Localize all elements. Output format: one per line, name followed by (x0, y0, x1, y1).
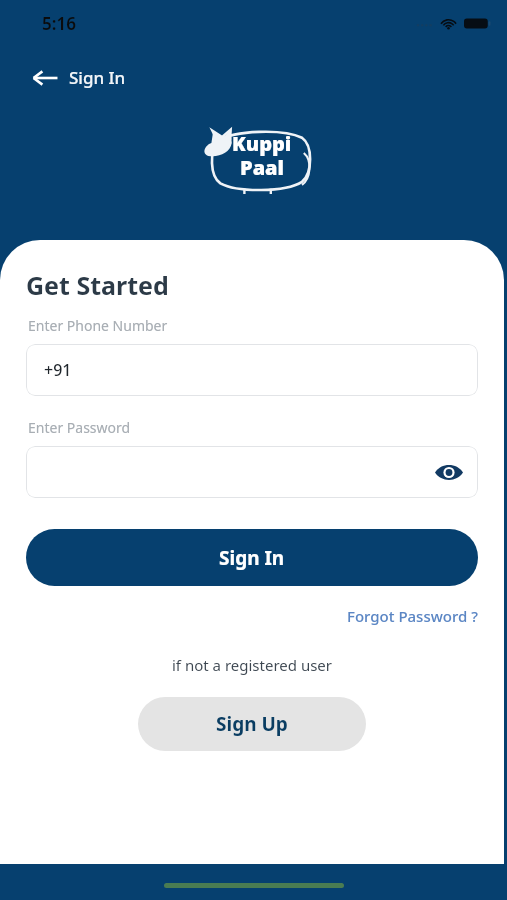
staticText: Enter Phone Number (28, 316, 168, 335)
staticText: if not a registered user (0, 655, 504, 675)
staticText: +91 (44, 359, 72, 381)
button[interactable]: Show password (432, 455, 466, 489)
button[interactable]: Sign In (26, 529, 478, 586)
staticText: 5:16 (42, 12, 76, 35)
staticText: Paal (240, 154, 285, 181)
staticText: Enter Password (28, 418, 131, 437)
button[interactable]: Back (26, 60, 132, 95)
staticText: Get Started (26, 268, 169, 302)
staticText: Sign Up (216, 711, 288, 737)
button[interactable]: Show password (26, 446, 478, 498)
button[interactable]: +91 (26, 344, 478, 396)
staticText: Sign In (69, 66, 126, 89)
button[interactable]: Sign Up (138, 697, 366, 751)
staticText: Kuppi (232, 130, 292, 157)
staticText: Sign In (219, 545, 285, 571)
button[interactable]: Forgot Password ? (347, 606, 478, 626)
